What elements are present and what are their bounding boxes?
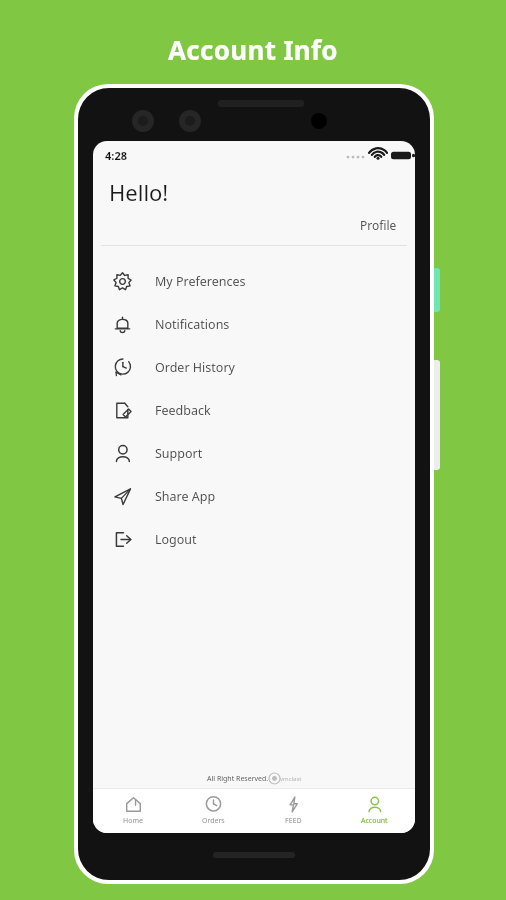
staticText: Profile bbox=[360, 217, 397, 233]
button[interactable]: Orders bbox=[173, 789, 253, 833]
staticText: Orders bbox=[202, 816, 225, 826]
button[interactable]: FEED bbox=[253, 789, 334, 833]
staticText: Support bbox=[155, 445, 203, 462]
button[interactable]: My Preferences bbox=[93, 260, 415, 303]
button[interactable]: Notifications bbox=[93, 303, 415, 346]
button[interactable]: Support bbox=[93, 432, 415, 475]
button[interactable]: Logout bbox=[93, 518, 415, 561]
staticText: Home bbox=[123, 816, 143, 826]
button[interactable]: Account bbox=[334, 789, 415, 833]
staticText: Hello! bbox=[109, 177, 169, 207]
staticText: Feedback bbox=[155, 402, 211, 419]
staticText: Account Info bbox=[0, 32, 506, 67]
staticText: My Preferences bbox=[155, 273, 246, 290]
staticText: Order History bbox=[155, 359, 235, 376]
staticText: Logout bbox=[155, 531, 197, 548]
staticText: All Right Reserved. bbox=[207, 774, 269, 784]
staticText: Notifications bbox=[155, 316, 230, 333]
staticText: Account bbox=[361, 816, 388, 826]
button[interactable]: Order History bbox=[93, 346, 415, 389]
staticText: vmclast bbox=[280, 775, 302, 783]
staticText: Share App bbox=[155, 488, 216, 505]
staticText: 4:28 bbox=[105, 148, 127, 163]
staticText: FEED bbox=[285, 816, 302, 826]
button[interactable]: Profile bbox=[93, 217, 415, 233]
button[interactable]: Home bbox=[93, 789, 173, 833]
button[interactable]: Feedback bbox=[93, 389, 415, 432]
button[interactable]: Share App bbox=[93, 475, 415, 518]
